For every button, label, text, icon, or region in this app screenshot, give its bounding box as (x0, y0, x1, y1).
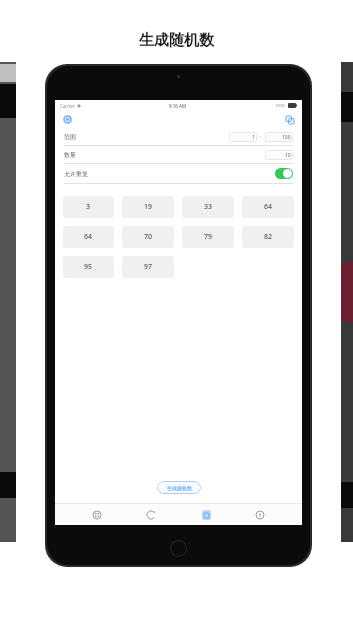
button[interactable]: 生成随机数 (157, 481, 201, 494)
staticText: 9:16 AM (169, 103, 187, 109)
button[interactable]: 95 (63, 256, 114, 278)
button[interactable]: 64 (63, 226, 114, 248)
staticText: 82 (264, 232, 273, 242)
button[interactable]: 79 (182, 226, 234, 248)
button[interactable]: 100 (265, 132, 293, 142)
button[interactable]: Info (62, 114, 73, 125)
button[interactable]: Info (247, 504, 273, 525)
staticText: 1 (252, 134, 255, 141)
staticText: Carrier (60, 103, 75, 109)
button[interactable]: Dice (84, 504, 110, 525)
staticText: 允许重复 (64, 170, 88, 178)
button[interactable]: 82 (242, 226, 294, 248)
button[interactable]: 1 (229, 132, 257, 142)
button[interactable]: 97 (122, 256, 174, 278)
staticText: 生成随机数 (139, 31, 214, 50)
button[interactable]: 数量 (64, 146, 293, 163)
staticText: 79 (204, 232, 213, 242)
staticText: 100 (282, 134, 291, 141)
button[interactable]: 3 (63, 196, 114, 218)
button[interactable]: 33 (182, 196, 234, 218)
staticText: 范围 (64, 133, 76, 141)
staticText: 数量 (64, 151, 76, 159)
button[interactable]: 70 (122, 226, 174, 248)
staticText: 33 (204, 202, 213, 212)
button[interactable]: 允许重复 (64, 164, 293, 183)
button[interactable]: Copy (284, 114, 295, 125)
staticText: 19 (144, 202, 153, 212)
button[interactable]: 19 (122, 196, 174, 218)
staticText: 100% (275, 103, 286, 108)
staticText: 95 (84, 262, 93, 272)
button[interactable]: Allow duplicates toggle (275, 168, 293, 179)
staticText: - (260, 133, 262, 140)
button[interactable]: 范围 (64, 128, 293, 145)
staticText: 70 (144, 232, 153, 242)
staticText: 生成随机数 (167, 485, 192, 491)
button[interactable]: 10 (265, 150, 293, 160)
staticText: 10 (285, 152, 291, 159)
staticText: 64 (264, 202, 273, 212)
button[interactable]: Coin (138, 504, 164, 525)
button[interactable]: 64 (242, 196, 294, 218)
staticText: 64 (84, 232, 93, 242)
staticText: 97 (144, 262, 153, 272)
button[interactable]: Random numbers (193, 504, 219, 525)
staticText: 3 (86, 202, 91, 212)
